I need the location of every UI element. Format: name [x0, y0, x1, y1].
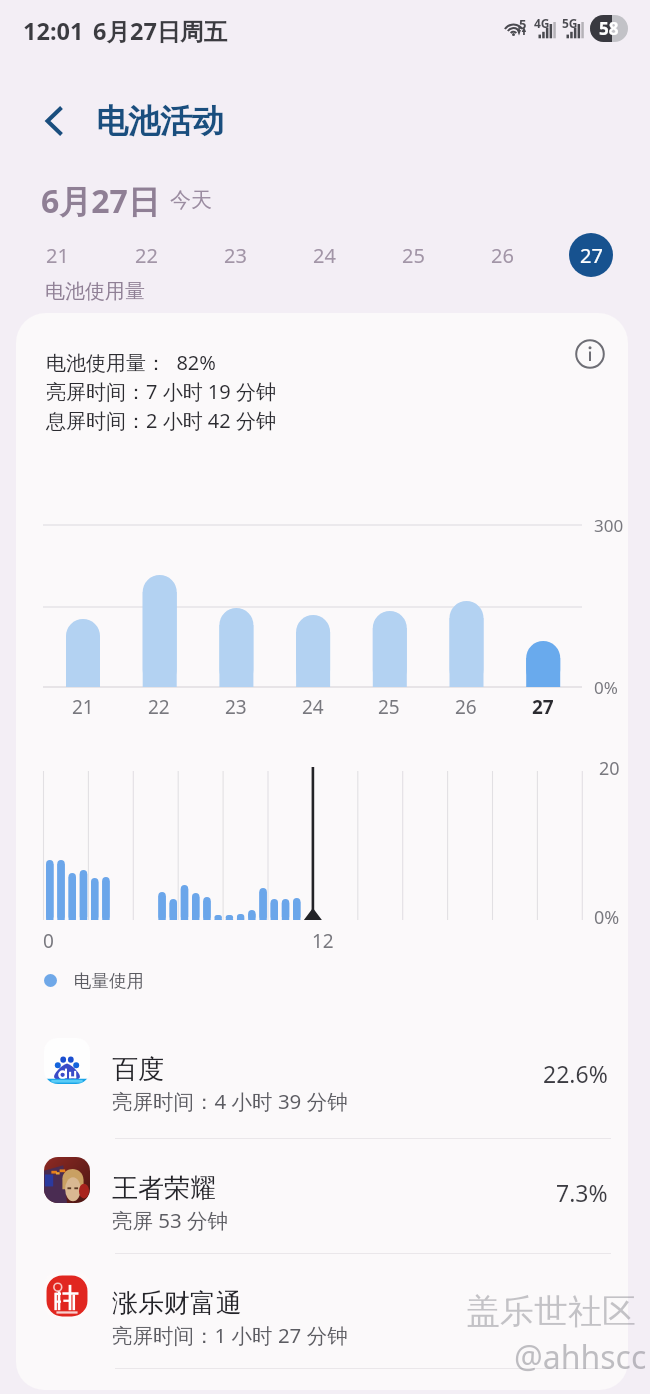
button[interactable]: 21: [35, 233, 79, 277]
staticText: 电池活动: [96, 101, 224, 141]
staticText: 涨乐财富通: [112, 1287, 242, 1320]
staticText: 22.6%: [543, 1058, 608, 1089]
staticText: 21: [46, 242, 69, 269]
staticText: 电池使用量： 82%: [46, 349, 216, 376]
staticText: 0: [43, 928, 54, 954]
button[interactable]: 24: [302, 233, 346, 277]
staticText: 26: [455, 694, 477, 720]
staticText: 12:01: [23, 15, 84, 47]
staticText: 23: [224, 242, 247, 269]
button[interactable]: Back: [32, 99, 78, 143]
staticText: 25: [378, 694, 400, 720]
staticText: 7.3%: [556, 1177, 608, 1208]
staticText: 亮屏时间：1 小时 27 分钟: [112, 1321, 348, 1349]
button[interactable]: 百度: [16, 1035, 628, 1148]
staticText: 0%: [594, 676, 618, 699]
button[interactable]: 王者荣耀: [16, 1154, 628, 1267]
staticText: 58: [599, 17, 619, 40]
staticText: 电池使用量: [45, 279, 145, 304]
staticText: 5: [519, 15, 527, 33]
staticText: 24: [313, 242, 336, 269]
staticText: 6月27日: [41, 179, 160, 223]
staticText: 4G: [534, 15, 550, 31]
staticText: 0%: [594, 905, 620, 930]
staticText: 20: [599, 756, 620, 781]
staticText: 盖乐世社区: [466, 1290, 636, 1333]
staticText: 23: [225, 694, 247, 720]
staticText: 300: [594, 514, 624, 537]
staticText: 电量使用: [74, 970, 144, 992]
button[interactable]: 26: [480, 233, 524, 277]
staticText: 6月27日周五: [93, 15, 228, 47]
staticText: 22: [135, 242, 158, 269]
staticText: 21: [72, 694, 94, 720]
button[interactable]: 25: [391, 233, 435, 277]
staticText: 27: [580, 242, 603, 269]
staticText: 息屏时间：2 小时 42 分钟: [46, 407, 276, 434]
staticText: 24: [302, 694, 324, 720]
staticText: @ahhscc: [514, 1335, 647, 1379]
staticText: 今天: [170, 187, 212, 213]
staticText: 王者荣耀: [112, 1172, 216, 1205]
button[interactable]: 22: [124, 233, 168, 277]
button[interactable]: Info: [563, 327, 617, 381]
button[interactable]: 27: [569, 233, 613, 277]
staticText: 亮屏时间：4 小时 39 分钟: [112, 1087, 348, 1115]
staticText: 22: [148, 694, 170, 720]
staticText: 百度: [112, 1053, 164, 1086]
staticText: 亮屏时间：7 小时 19 分钟: [46, 378, 276, 405]
staticText: 12: [312, 928, 334, 954]
button[interactable]: 23: [213, 233, 257, 277]
staticText: 亮屏 53 分钟: [112, 1206, 229, 1234]
staticText: 27: [532, 694, 554, 720]
staticText: 25: [402, 242, 425, 269]
button[interactable]: 涨乐财富通: [16, 1269, 628, 1382]
staticText: 5G: [562, 15, 578, 31]
staticText: 26: [491, 242, 514, 269]
button[interactable]: 电池活动: [96, 101, 224, 141]
